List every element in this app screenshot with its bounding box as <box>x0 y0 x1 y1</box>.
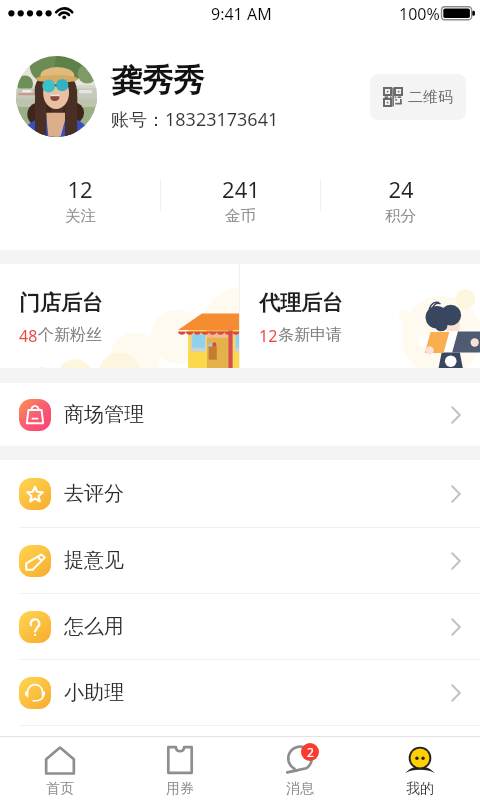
staticText: 商场管理 <box>64 402 144 427</box>
staticText: 我的 <box>406 780 434 798</box>
staticText: 账号：18323173641 <box>111 107 279 132</box>
button[interactable]: 241 <box>161 165 320 250</box>
staticText: 用券 <box>166 780 194 798</box>
button[interactable]: 用券 <box>120 737 240 800</box>
staticText: 241 <box>222 174 260 204</box>
button[interactable]: 12 <box>0 165 160 250</box>
staticText: 消息 <box>286 780 314 798</box>
staticText: 条新申请 <box>278 325 342 345</box>
staticText: 去评分 <box>64 481 124 506</box>
staticText: 代理后台 <box>259 290 343 316</box>
button[interactable]: 24 <box>321 165 480 250</box>
button[interactable]: Profile photo <box>16 56 97 137</box>
staticText: 怎么用 <box>64 614 124 639</box>
staticText: 24 <box>388 174 414 204</box>
button[interactable]: 怎么用 <box>0 594 480 659</box>
staticText: 个新粉丝 <box>38 325 102 345</box>
staticText: 门店后台 <box>19 290 103 316</box>
staticText: 龚秀秀 <box>111 61 204 100</box>
staticText: 9:41 AM <box>211 3 272 25</box>
button[interactable]: 我的 <box>360 737 480 800</box>
staticText: 首页 <box>46 780 74 798</box>
staticText: 提意见 <box>64 548 124 573</box>
button[interactable]: 代理后台 <box>240 264 480 368</box>
staticText: 小助理 <box>64 680 124 705</box>
staticText: 金币 <box>225 206 256 226</box>
button[interactable]: 小助理 <box>0 660 480 725</box>
button[interactable]: 2 <box>240 737 360 800</box>
staticText: 关注 <box>65 206 96 226</box>
staticText: 2 <box>307 744 314 760</box>
button[interactable]: 提意见 <box>0 528 480 593</box>
staticText: 12 <box>259 325 278 347</box>
staticText: 二维码 <box>408 88 453 107</box>
button[interactable]: 首页 <box>0 737 120 800</box>
button[interactable]: 去评分 <box>0 460 480 527</box>
button[interactable]: 门店后台 <box>0 264 239 368</box>
staticText: 积分 <box>385 206 416 226</box>
staticText: 100% <box>399 3 440 25</box>
staticText: 48 <box>19 325 38 347</box>
button[interactable]: 商场管理 <box>0 383 480 446</box>
button[interactable]: 二维码 <box>370 74 466 120</box>
staticText: 12 <box>67 174 93 204</box>
